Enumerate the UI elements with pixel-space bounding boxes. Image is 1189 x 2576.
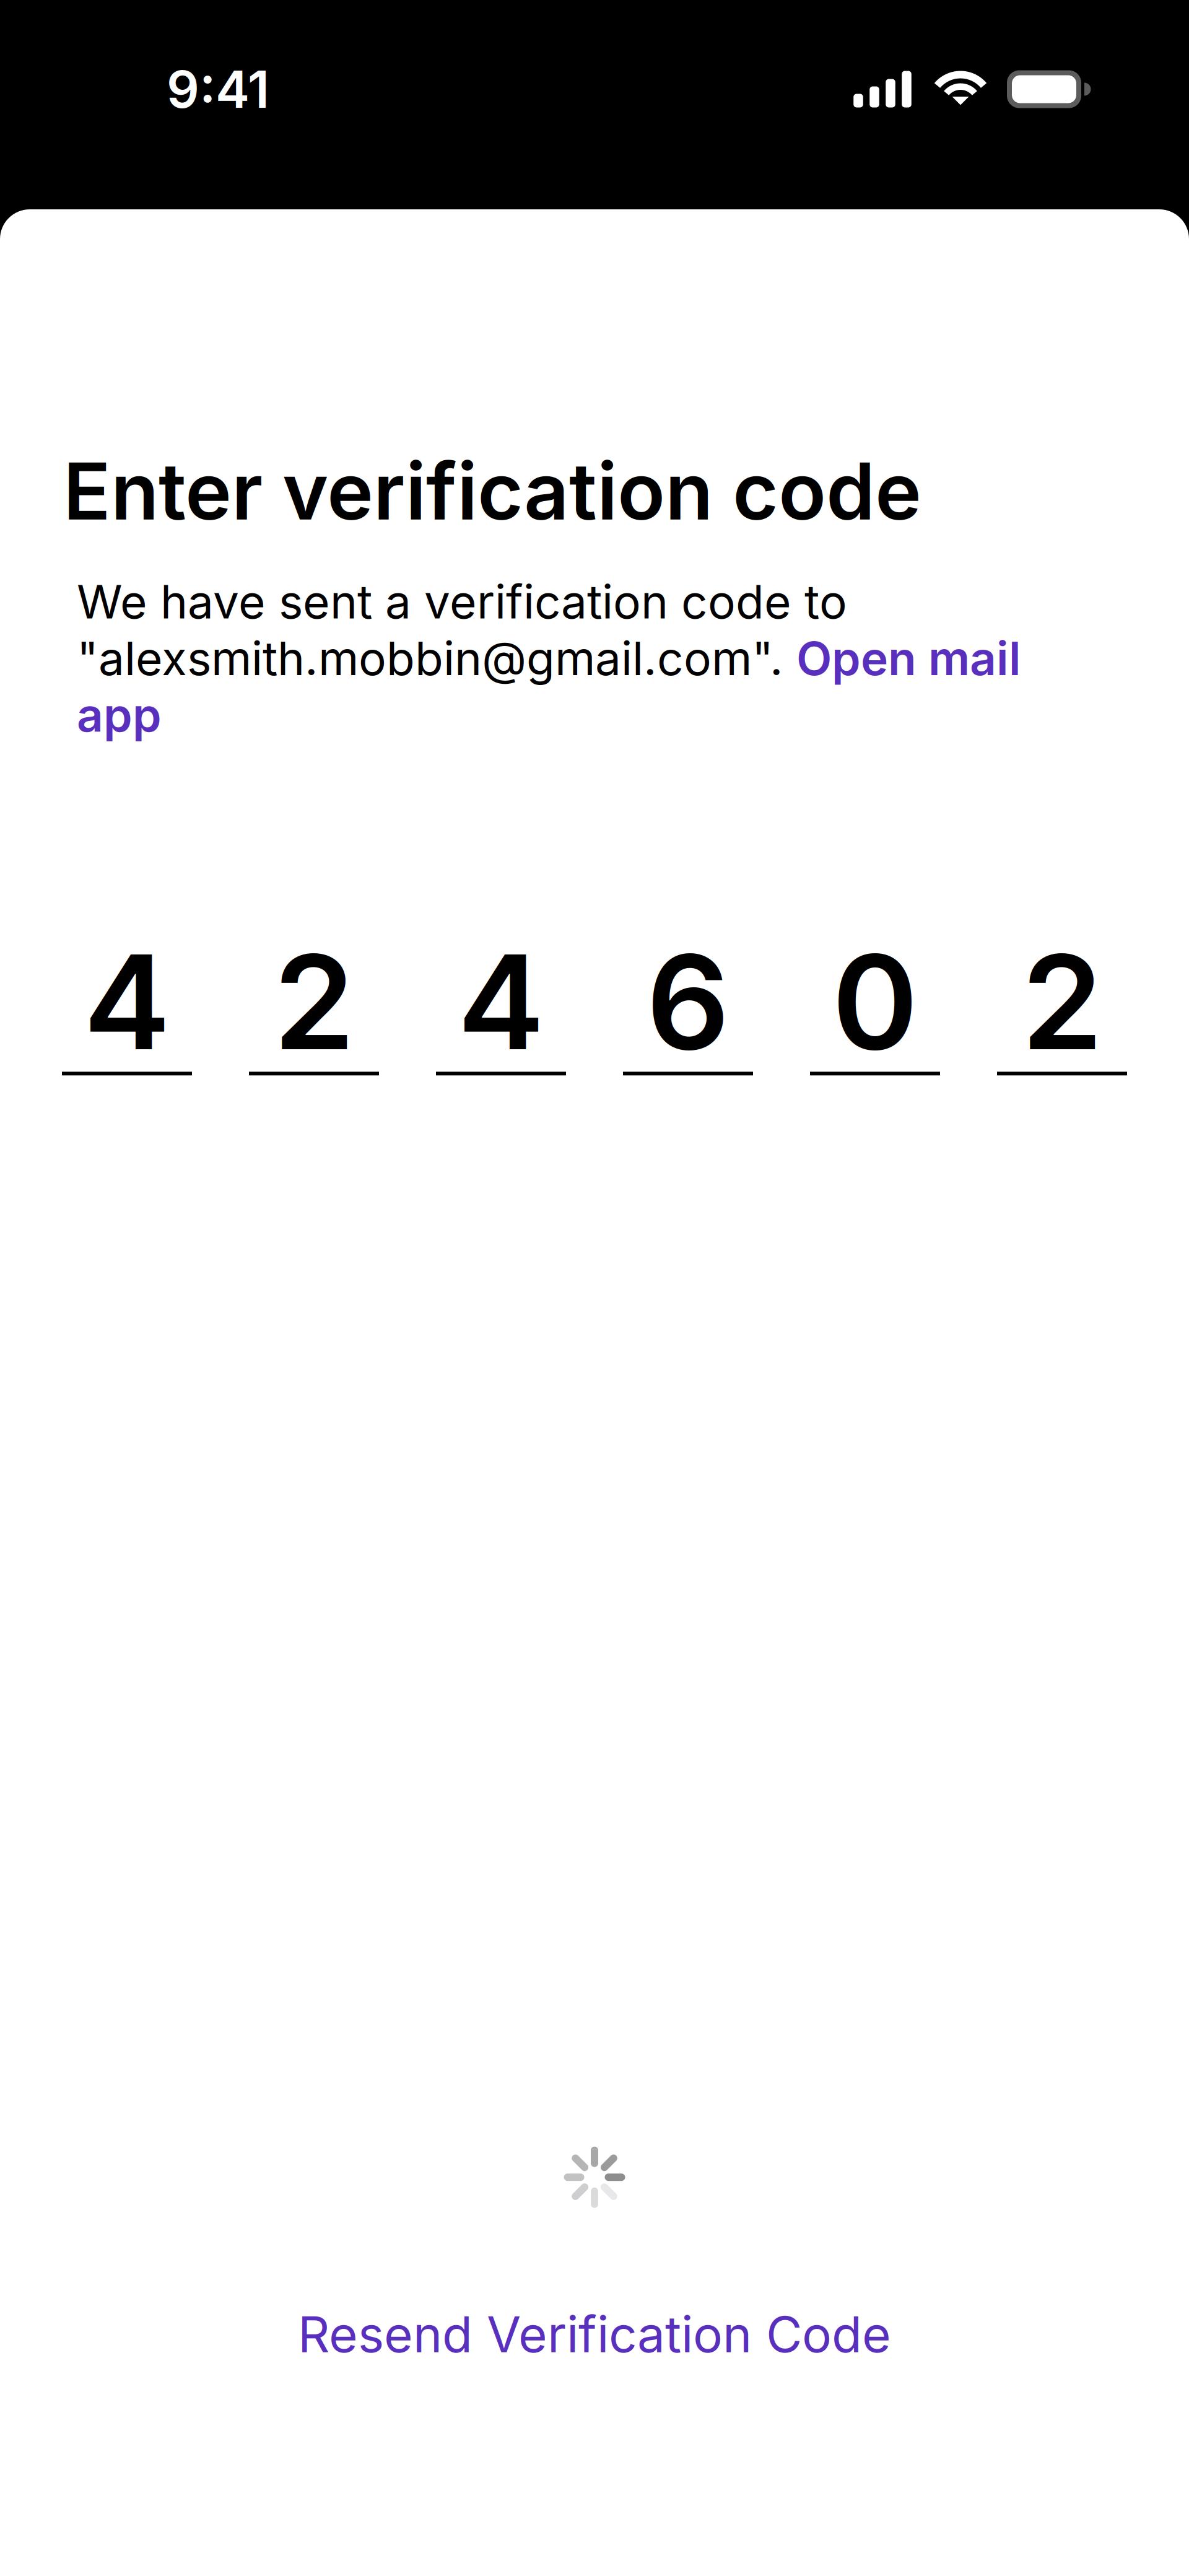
staticText: 9:41: [167, 58, 269, 120]
button[interactable]: Resend Verification Code: [0, 2289, 1189, 2379]
button[interactable]: Open mail app: [77, 630, 1021, 743]
staticText: Enter verification code: [63, 443, 921, 538]
staticText: 2: [1021, 923, 1103, 1081]
staticText: app: [77, 687, 162, 743]
staticText: "alexsmith.mobbin@gmail.com".: [77, 630, 796, 686]
staticText: 0: [832, 923, 918, 1081]
staticText: We have sent a verification code to: [77, 574, 847, 630]
staticText: 4: [458, 923, 544, 1081]
staticText: 4: [84, 923, 170, 1081]
staticText: 6: [646, 923, 730, 1081]
staticText: Resend Verification Code: [298, 2304, 891, 2364]
staticText: 2: [273, 923, 355, 1081]
staticText: Open mail: [796, 630, 1021, 686]
